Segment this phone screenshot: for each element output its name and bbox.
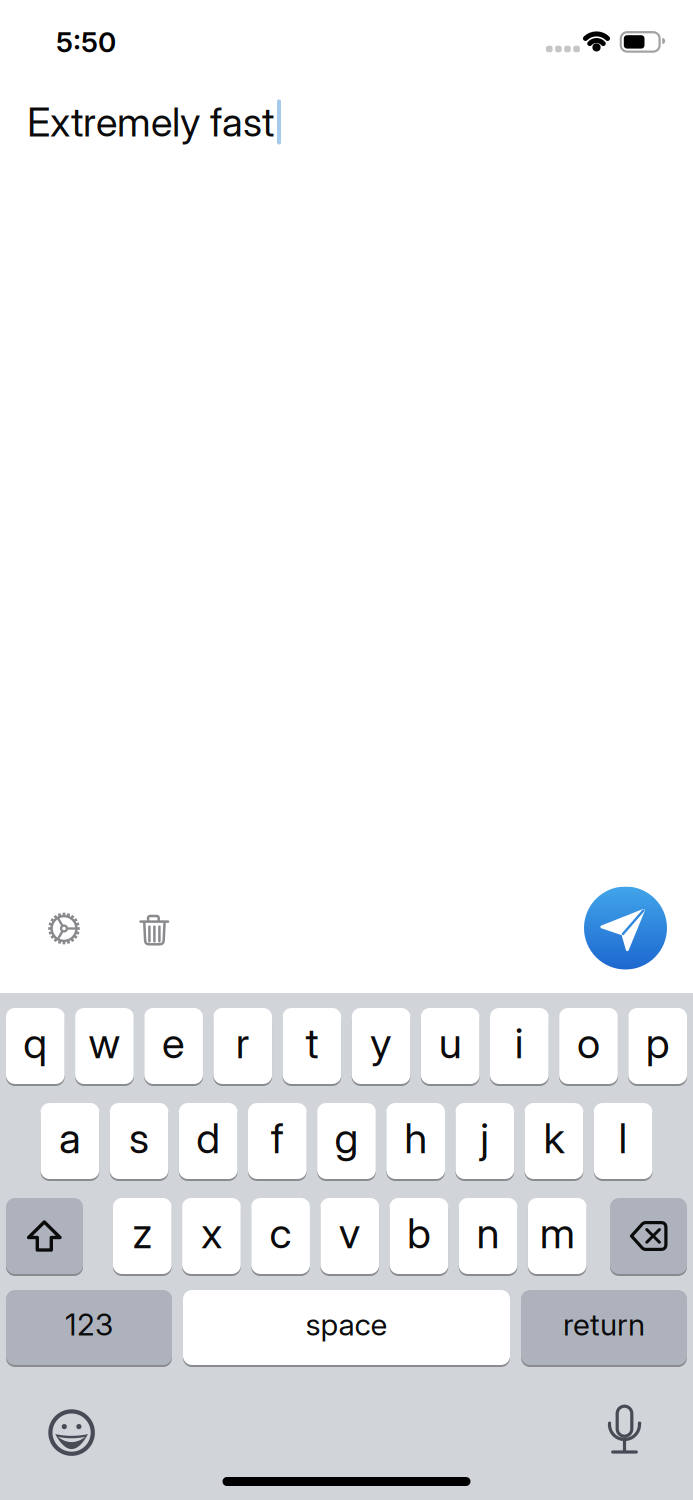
button[interactable]: t	[283, 1007, 341, 1085]
button[interactable]: i	[490, 1007, 549, 1085]
button[interactable]: m	[528, 1197, 587, 1275]
button[interactable]: q	[6, 1007, 65, 1085]
staticText: s	[129, 1113, 149, 1163]
staticText: m	[540, 1208, 575, 1258]
button[interactable]: l	[594, 1102, 652, 1180]
staticText: 123	[65, 1306, 113, 1343]
staticText: c	[270, 1208, 292, 1258]
button[interactable]: f	[248, 1102, 307, 1180]
staticText: 5:50	[56, 25, 116, 59]
staticText: r	[236, 1018, 250, 1068]
button[interactable]: Send	[583, 886, 667, 970]
staticText: g	[334, 1113, 358, 1163]
button[interactable]: r	[213, 1007, 272, 1085]
staticText: t	[305, 1018, 318, 1068]
staticText: a	[59, 1113, 81, 1163]
staticText: u	[439, 1018, 462, 1068]
button[interactable]: k	[525, 1102, 583, 1180]
button[interactable]: x	[182, 1197, 241, 1275]
button[interactable]: h	[386, 1102, 445, 1180]
button[interactable]: space	[183, 1289, 510, 1366]
staticText: p	[646, 1018, 670, 1068]
staticText: return	[563, 1306, 645, 1343]
button[interactable]: a	[41, 1102, 99, 1180]
staticText: x	[201, 1208, 222, 1258]
button[interactable]: Settings	[42, 906, 86, 950]
staticText: k	[543, 1113, 564, 1163]
staticText: i	[515, 1018, 524, 1068]
button[interactable]: u	[421, 1007, 480, 1085]
button[interactable]: v	[320, 1197, 379, 1275]
button[interactable]: o	[559, 1007, 618, 1085]
staticText: e	[162, 1018, 185, 1068]
button[interactable]: Shift	[6, 1197, 83, 1275]
button[interactable]: s	[110, 1102, 168, 1180]
staticText: w	[88, 1018, 120, 1068]
staticText: n	[477, 1208, 500, 1258]
staticText: h	[404, 1113, 427, 1163]
button[interactable]: Dictate	[607, 1403, 641, 1455]
button[interactable]: Backspace	[610, 1197, 687, 1275]
staticText: z	[132, 1208, 152, 1258]
button[interactable]: p	[628, 1007, 687, 1085]
button[interactable]: n	[459, 1197, 517, 1275]
staticText: v	[339, 1208, 361, 1258]
staticText: f	[271, 1113, 284, 1163]
button[interactable]: j	[455, 1102, 514, 1180]
staticText: j	[480, 1113, 489, 1163]
staticText: l	[619, 1113, 628, 1163]
button[interactable]: e	[144, 1007, 203, 1085]
button[interactable]: g	[317, 1102, 376, 1180]
button[interactable]: b	[390, 1197, 448, 1275]
staticText: d	[196, 1113, 220, 1163]
staticText: o	[577, 1018, 600, 1068]
button[interactable]: z	[113, 1197, 172, 1275]
staticText: q	[23, 1018, 47, 1068]
staticText: space	[305, 1306, 387, 1343]
button[interactable]: return	[521, 1289, 687, 1366]
button[interactable]: w	[75, 1007, 134, 1085]
button[interactable]: 123	[6, 1289, 172, 1366]
staticText: y	[370, 1018, 392, 1068]
button[interactable]: c	[251, 1197, 310, 1275]
staticText: b	[407, 1208, 431, 1258]
button[interactable]: Emoji	[44, 1405, 100, 1461]
button[interactable]: y	[352, 1007, 410, 1085]
staticText: Extremely fast	[27, 98, 274, 146]
button[interactable]: Delete	[138, 913, 170, 947]
button[interactable]: d	[179, 1102, 238, 1180]
